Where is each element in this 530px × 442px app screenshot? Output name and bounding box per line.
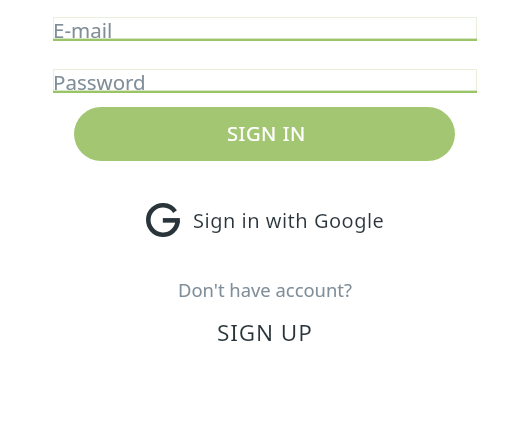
staticText: Don't have account? xyxy=(178,277,352,302)
staticText: SIGN UP xyxy=(217,317,313,343)
staticText: Password xyxy=(53,68,146,92)
staticText: SIGN IN xyxy=(227,120,306,147)
staticText: Sign in with Google xyxy=(193,207,385,234)
button[interactable]: Password xyxy=(53,69,477,93)
button[interactable]: Sign in with Google xyxy=(146,200,385,240)
other: Sign in with Google xyxy=(146,203,180,237)
button[interactable]: SIGN UP xyxy=(213,317,317,343)
staticText: E-mail xyxy=(53,16,113,40)
button[interactable]: SIGN IN xyxy=(74,107,455,161)
button[interactable]: E-mail xyxy=(53,17,477,41)
